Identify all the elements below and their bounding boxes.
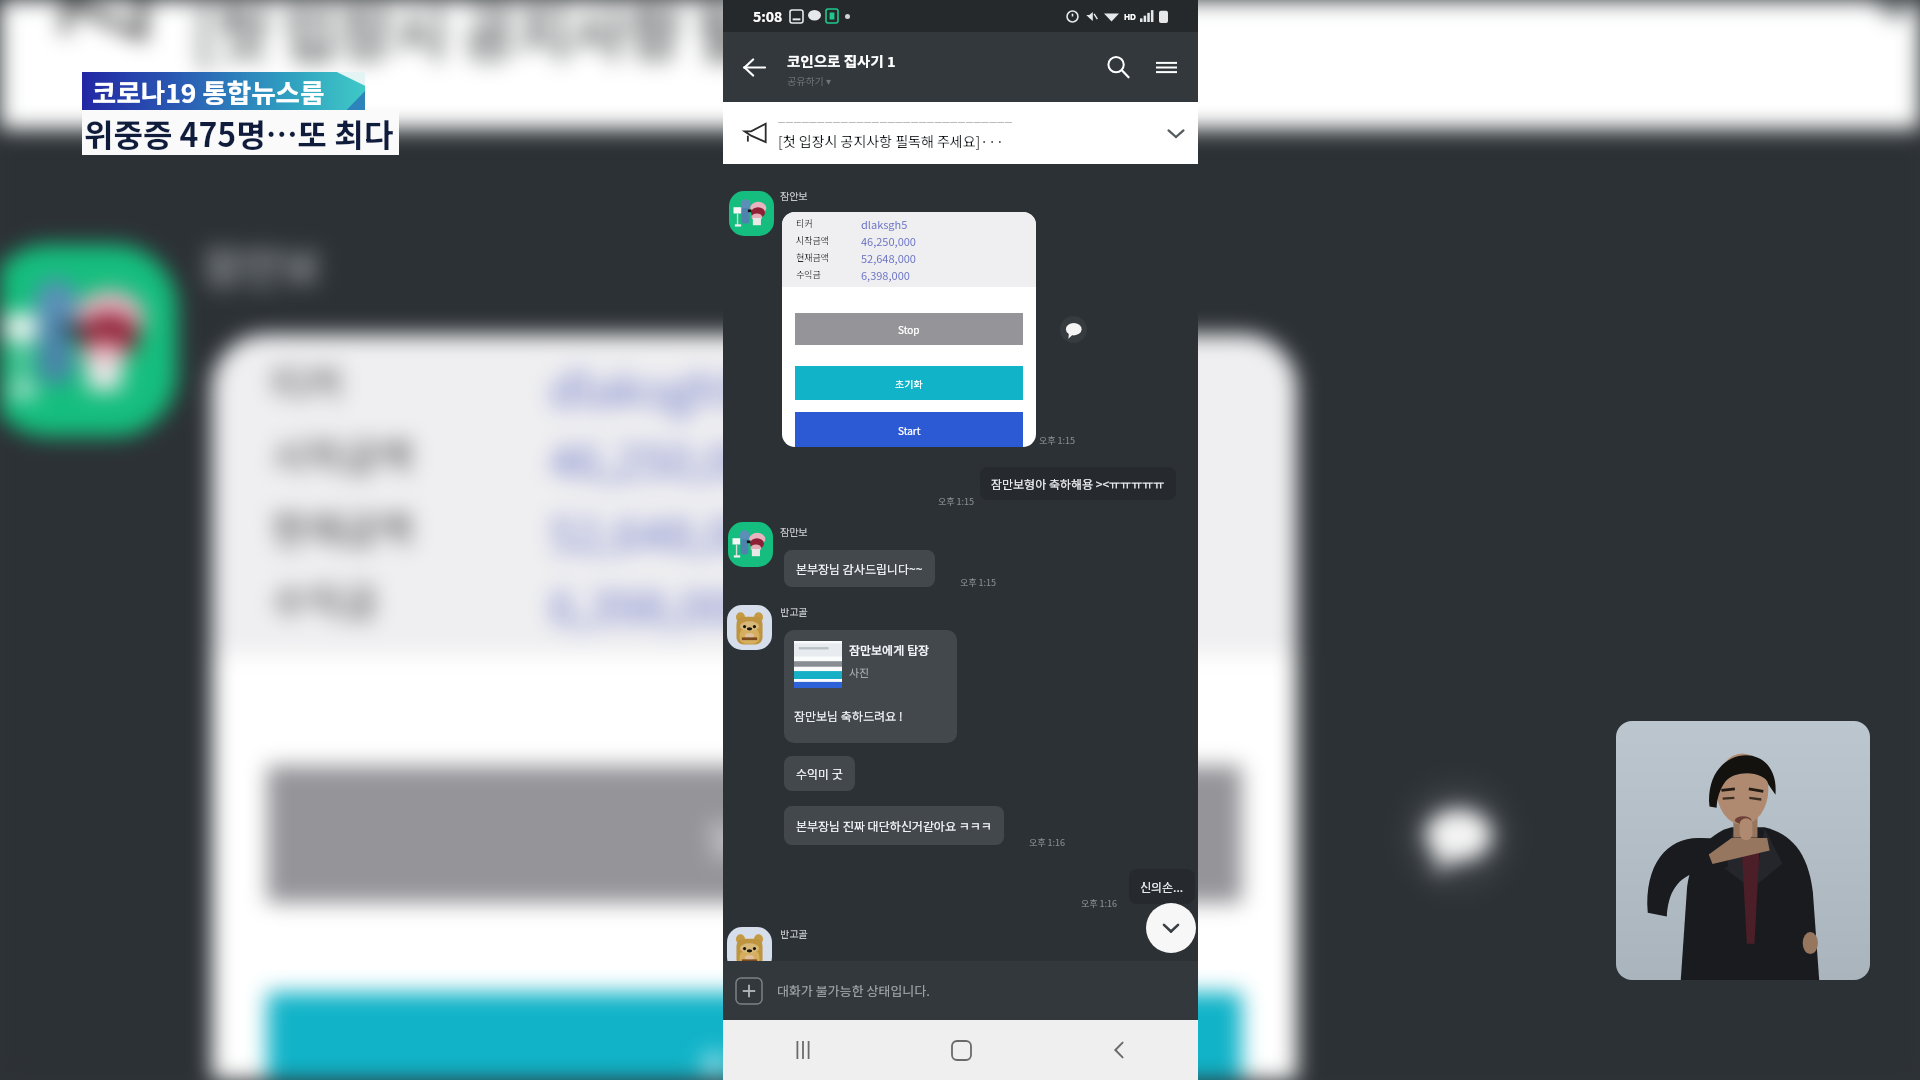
button[interactable]: Profile 반고골 [727, 605, 772, 650]
button[interactable]: Stop [795, 313, 1023, 345]
staticText: 46,250,000 [549, 424, 784, 492]
staticText: 초기화 [695, 1035, 814, 1080]
staticText: 수익금 [796, 268, 861, 281]
button[interactable]: 초기화 [267, 992, 1242, 1080]
staticText: 5:08 [753, 6, 783, 26]
staticText: 오후 1:15 [938, 495, 975, 508]
staticText: 사진 [849, 664, 870, 680]
staticText: 본부장님 감사드립니다~~ [796, 560, 923, 577]
staticText: 티커 [796, 217, 861, 230]
staticText: 오후 1:15 [1039, 434, 1076, 447]
staticText: 오후 1:16 [1081, 897, 1118, 910]
staticText: 코인으로 집사기 1 [787, 50, 896, 71]
staticText: dlaksgh5 [549, 351, 750, 420]
staticText: 잠만보에게 탑장 [849, 641, 929, 658]
staticText: 시작금액 [796, 234, 861, 247]
button[interactable]: Menu [1144, 32, 1188, 102]
button[interactable]: Profile 잠만보 [728, 522, 773, 567]
button[interactable]: 잠만보에게 탑장 [784, 630, 957, 743]
button[interactable]: 신의손... [1129, 869, 1195, 904]
staticText: ㅡㅡㅡㅡㅡㅡㅡㅡㅡㅡㅡㅡㅡㅡㅡㅡㅡㅡㅡㅡㅡㅡㅡㅡㅡㅡㅡㅡㅡㅡ [778, 116, 1013, 128]
staticText: 오후 1:15 [960, 576, 997, 589]
staticText: [첫 입장시 공지사항 필독해 주세요]··· [194, 0, 1160, 73]
button[interactable]: Back [1040, 1020, 1198, 1080]
button[interactable]: 티커 [782, 212, 1036, 447]
staticText: 반고골 [780, 926, 808, 940]
staticText: Start [898, 423, 921, 437]
button[interactable]: Start [795, 412, 1023, 447]
staticText: 수익미 굿 [796, 765, 843, 782]
staticText: 티커 [271, 355, 549, 411]
staticText: 잠안보 [203, 232, 323, 291]
button[interactable]: Profile 반고골 [727, 927, 772, 972]
staticText: 대화가 불가능한 상태입니다. [777, 981, 930, 1000]
button[interactable]: 잠만보형아 축하해용 ><ㅠㅠㅠㅠㅠ [980, 467, 1176, 500]
button[interactable]: 본부장님 감사드립니다~~ [784, 550, 935, 587]
button[interactable]: Recent apps [723, 1020, 882, 1080]
staticText: 현재금액 [271, 501, 549, 556]
staticText: [첫 입장시 공지사항 필독해 주세요]··· [778, 131, 1004, 151]
staticText: 6,398,000 [861, 267, 910, 283]
button[interactable]: 본부장님 진짜 대단하신거같아요 ㅋㅋㅋ [784, 806, 1004, 845]
staticText: 수익금 [271, 573, 549, 629]
staticText: 오후 1:16 [1029, 836, 1066, 849]
button[interactable]: Back [732, 32, 777, 102]
button[interactable]: Scroll to bottom [1146, 903, 1196, 953]
button[interactable]: Expand notice [1154, 102, 1198, 164]
button[interactable]: 티커 [212, 334, 1297, 1080]
staticText: 잠만보형아 축하해용 ><ㅠㅠㅠㅠㅠ [991, 475, 1165, 492]
staticText: 46,250,000 [861, 233, 916, 249]
button[interactable]: Home [882, 1020, 1040, 1080]
staticText: 52,648,000 [861, 250, 916, 266]
button[interactable]: Search [1096, 32, 1140, 102]
staticText: 잠만보님 축하드려요 ! [794, 707, 903, 724]
staticText: 공유하기 ▾ [787, 73, 832, 87]
staticText: 현재금액 [796, 251, 861, 264]
button[interactable]: Expand notice [1801, 0, 1920, 129]
staticText: 위중증 475명…또 최다 [84, 110, 394, 155]
staticText: 잠만보 [780, 524, 808, 538]
button[interactable]: Profile 잠만보 [0, 244, 177, 437]
button[interactable]: Profile 잠만보 [729, 191, 774, 236]
staticText: dlaksgh5 [861, 216, 908, 232]
button[interactable]: 초기화 [795, 366, 1023, 400]
staticText: 본부장님 진짜 대단하신거같아요 ㅋㅋㅋ [796, 817, 992, 834]
button[interactable]: Stop [267, 766, 1242, 903]
staticText: 코로나19 통합뉴스룸 [92, 72, 325, 110]
button[interactable]: 수익미 굿 [784, 756, 855, 791]
staticText: 잠안보 [780, 188, 808, 202]
staticText: 시작금액 [271, 428, 549, 484]
button[interactable]: Attach [735, 977, 763, 1005]
staticText: 초기화 [895, 376, 923, 390]
staticText: 신의손... [1140, 878, 1184, 895]
staticText: Stop [707, 804, 801, 864]
staticText: 52,648,000 [549, 496, 784, 565]
staticText: 반고골 [780, 604, 808, 618]
staticText: HD [1124, 11, 1136, 22]
staticText: 6,398,000 [549, 569, 759, 638]
staticText: Stop [898, 322, 920, 336]
